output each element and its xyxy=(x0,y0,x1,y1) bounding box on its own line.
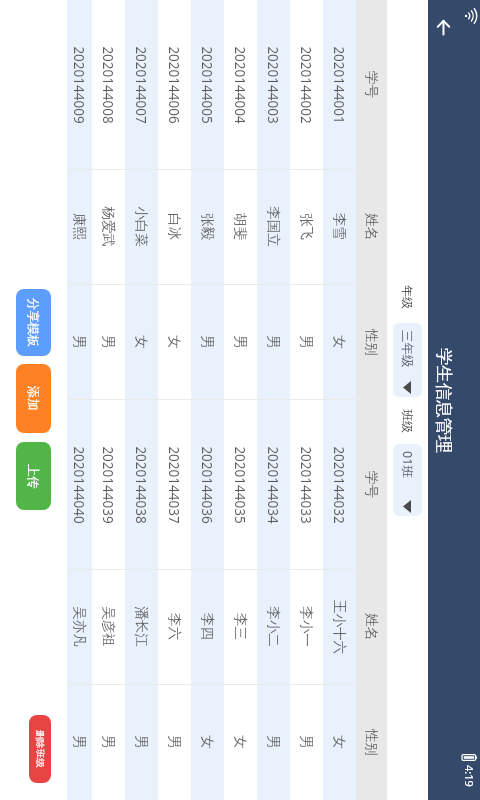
button[interactable]: 2020144003 xyxy=(257,0,290,400)
staticText: 康熙 xyxy=(71,213,88,240)
button[interactable]: 2020144038 xyxy=(125,400,158,800)
button[interactable]: Back xyxy=(428,12,460,42)
staticText: 2020144004 xyxy=(231,46,249,124)
staticText: 2020144003 xyxy=(264,46,282,124)
button[interactable]: 01班 xyxy=(393,444,422,516)
staticText: 李小一 xyxy=(298,606,315,647)
button[interactable]: 2020144036 xyxy=(191,400,224,800)
staticText: 2020144008 xyxy=(99,46,117,124)
button[interactable]: 2020144033 xyxy=(290,400,323,800)
staticText: 吴彦祖 xyxy=(100,606,117,647)
staticText: 2020144040 xyxy=(70,446,88,524)
staticText: 胡斐 xyxy=(232,213,249,240)
staticText: 学号 xyxy=(363,471,380,498)
button[interactable]: 2020144007 xyxy=(125,0,158,400)
staticText: 男 xyxy=(100,335,117,349)
staticText: 年级 xyxy=(400,285,415,309)
staticText: 性别 xyxy=(363,329,380,356)
staticText: 李国立 xyxy=(265,206,282,247)
staticText: 男 xyxy=(100,735,117,749)
button[interactable]: 2020144040 xyxy=(67,400,92,800)
staticText: 性别 xyxy=(363,729,380,756)
button[interactable]: 2020144039 xyxy=(92,400,125,800)
staticText: 男 xyxy=(133,735,150,749)
staticText: 潘长江 xyxy=(133,606,150,647)
staticText: 班级 xyxy=(400,409,415,433)
staticText: 2020144001 xyxy=(330,46,348,124)
button[interactable]: 2020144009 xyxy=(67,0,92,400)
button[interactable]: 分享模板 xyxy=(16,289,51,356)
staticText: 男 xyxy=(265,735,282,749)
button[interactable]: 2020144008 xyxy=(92,0,125,400)
staticText: 2020144007 xyxy=(132,46,150,124)
button[interactable]: 2020144037 xyxy=(158,400,191,800)
staticText: 上传 xyxy=(26,464,41,489)
staticText: 分享模板 xyxy=(26,298,41,348)
button[interactable]: 上传 xyxy=(16,442,51,510)
staticText: 男 xyxy=(298,735,315,749)
staticText: 学生信息管理 xyxy=(433,348,455,453)
staticText: 男 xyxy=(199,335,216,349)
staticText: 男 xyxy=(265,335,282,349)
staticText: 2020144035 xyxy=(231,446,249,524)
staticText: 女 xyxy=(331,735,348,749)
staticText: 杨爱武 xyxy=(100,206,117,247)
staticText: 2020144032 xyxy=(330,446,348,524)
staticText: 王小十六 xyxy=(331,600,348,654)
button[interactable]: 2020144002 xyxy=(290,0,323,400)
staticText: 三年级 xyxy=(399,330,415,368)
button[interactable]: 2020144004 xyxy=(224,0,257,400)
staticText: 张飞 xyxy=(298,213,315,240)
staticText: 李小二 xyxy=(265,606,282,647)
staticText: 女 xyxy=(199,735,216,749)
button[interactable]: 2020144005 xyxy=(191,0,224,400)
staticText: 男 xyxy=(71,335,88,349)
staticText: 添加 xyxy=(26,386,41,411)
staticText: 李三 xyxy=(232,613,249,640)
button[interactable]: 2020144032 xyxy=(323,400,356,800)
staticText: 女 xyxy=(133,335,150,349)
staticText: 吴亦凡 xyxy=(71,606,88,647)
staticText: 删除班级 xyxy=(34,730,46,768)
staticText: 2020144034 xyxy=(264,446,282,524)
staticText: 女 xyxy=(166,335,183,349)
staticText: 男 xyxy=(166,735,183,749)
staticText: 女 xyxy=(331,335,348,349)
staticText: 2020144009 xyxy=(70,46,88,124)
staticText: 2020144002 xyxy=(297,46,315,124)
button[interactable]: 2020144035 xyxy=(224,400,257,800)
staticText: 男 xyxy=(232,335,249,349)
staticText: 李六 xyxy=(166,613,183,640)
staticText: 李四 xyxy=(199,613,216,640)
staticText: 01班 xyxy=(399,451,416,478)
staticText: 小白菜 xyxy=(133,206,150,247)
staticText: 女 xyxy=(232,735,249,749)
staticText: 张毅 xyxy=(199,213,216,240)
staticText: 2020144039 xyxy=(99,446,117,524)
button[interactable]: 三年级 xyxy=(393,323,422,397)
staticText: 2020144036 xyxy=(198,446,216,524)
staticText: 男 xyxy=(298,335,315,349)
staticText: 2020144005 xyxy=(198,46,216,124)
button[interactable]: 删除班级 xyxy=(29,715,51,783)
button[interactable]: 2020144006 xyxy=(158,0,191,400)
button[interactable]: 2020144001 xyxy=(323,0,356,400)
staticText: 4:19 xyxy=(462,765,477,787)
staticText: 李雪 xyxy=(331,213,348,240)
staticText: 2020144006 xyxy=(165,46,183,124)
staticText: 2020144038 xyxy=(132,446,150,524)
staticText: 白冰 xyxy=(166,213,183,240)
staticText: 2020144037 xyxy=(165,446,183,524)
staticText: 2020144033 xyxy=(297,446,315,524)
staticText: 学号 xyxy=(363,71,380,98)
staticText: 姓名 xyxy=(363,213,380,240)
staticText: 男 xyxy=(71,735,88,749)
button[interactable]: 2020144034 xyxy=(257,400,290,800)
button[interactable]: 添加 xyxy=(16,364,51,433)
staticText: 姓名 xyxy=(363,613,380,640)
